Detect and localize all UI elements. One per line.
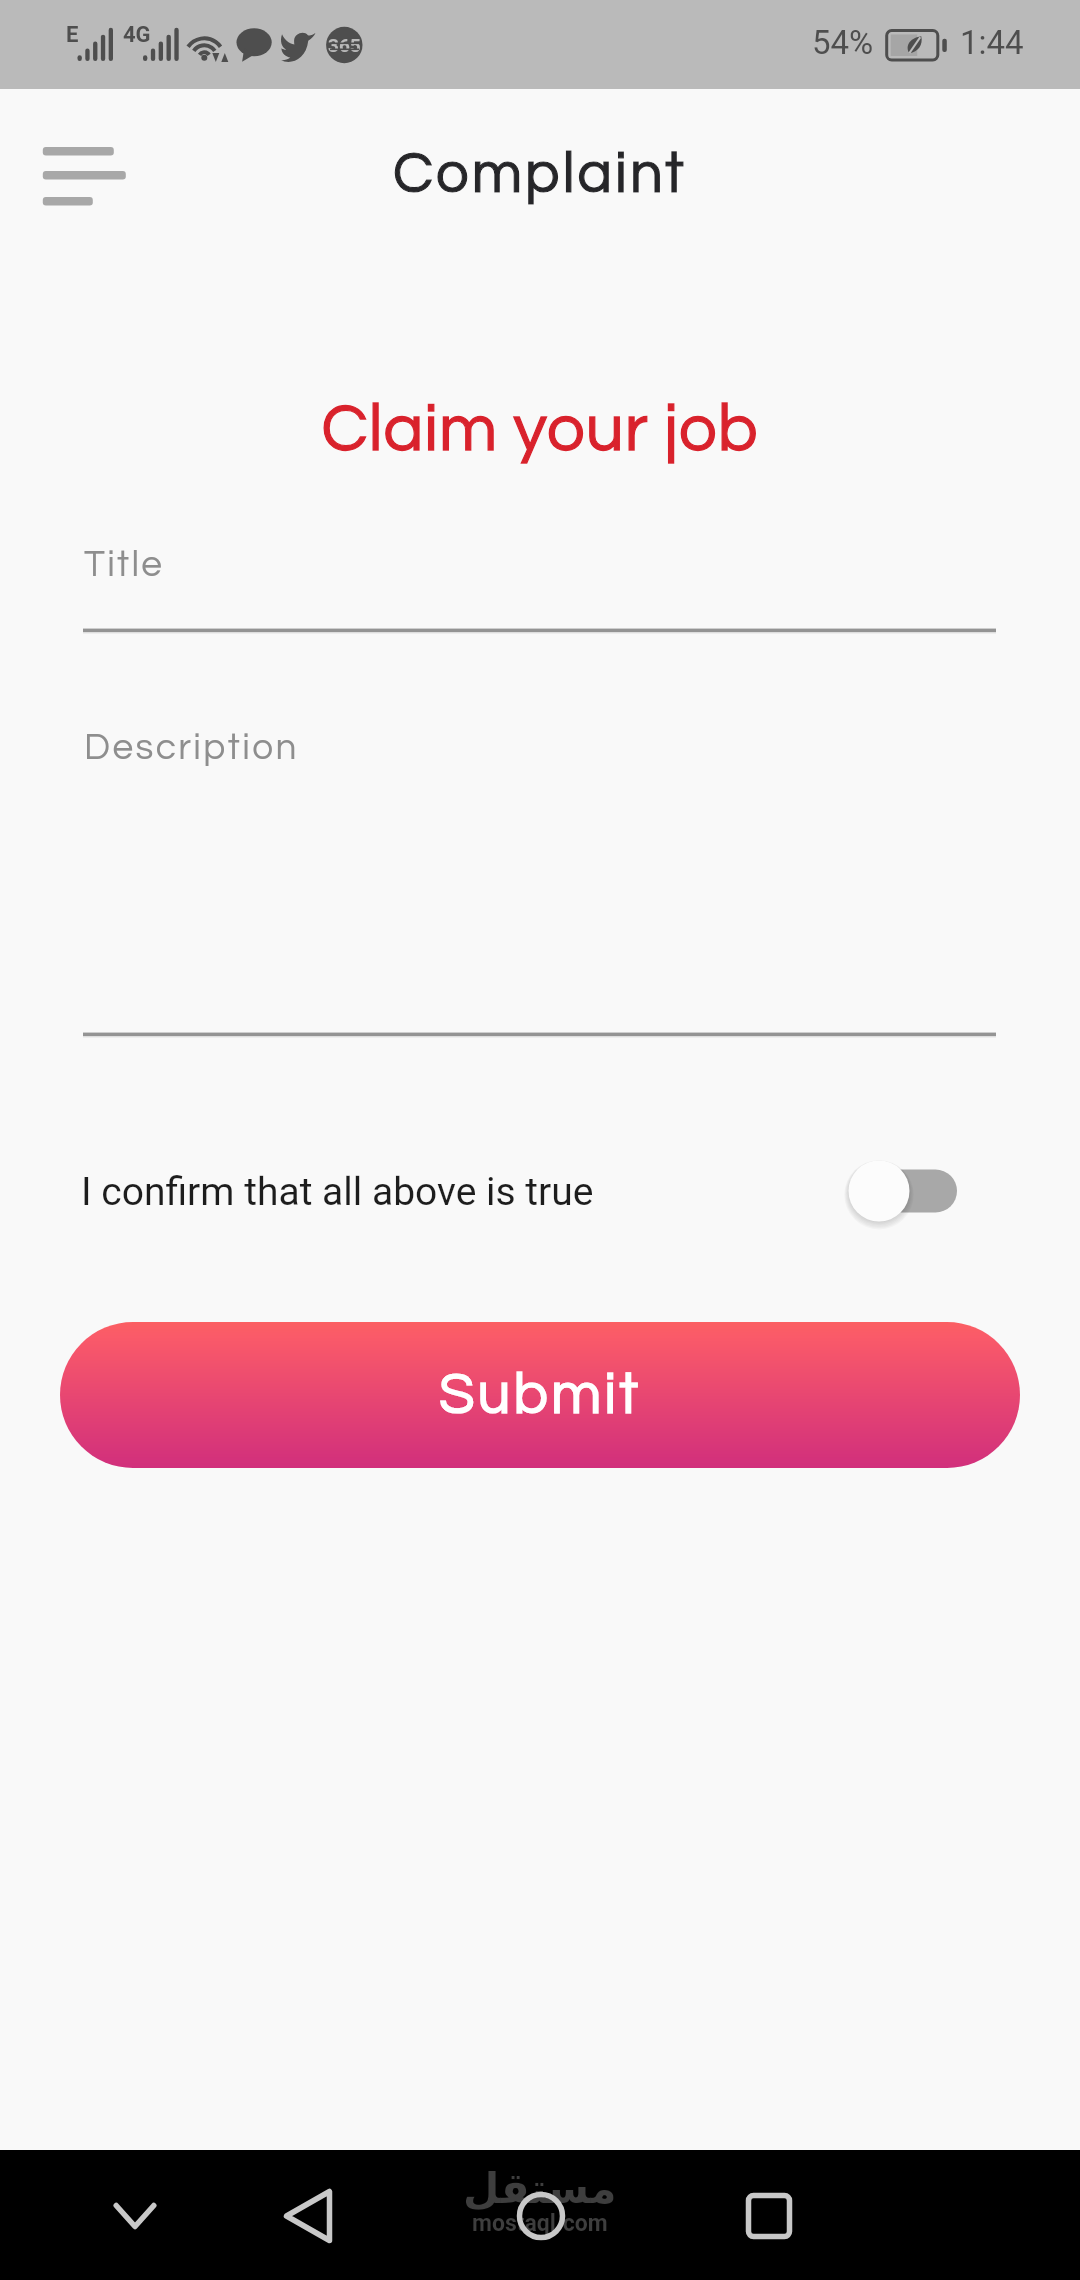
staticText: mostaql.com bbox=[472, 2210, 608, 2237]
staticText: مستقل bbox=[463, 2164, 617, 2213]
staticText: I confirm that all above is true bbox=[81, 1169, 594, 1215]
button[interactable]: Home bbox=[495, 2170, 587, 2262]
staticText: Claim your job bbox=[0, 395, 1080, 464]
staticText: Complaint bbox=[0, 144, 1080, 204]
staticText: 365 bbox=[328, 34, 361, 56]
staticText: Submit bbox=[430, 1365, 650, 1425]
staticText: 4G bbox=[123, 22, 151, 48]
staticText: Claim your job bbox=[0, 395, 1080, 464]
staticText: 54% bbox=[812, 23, 874, 62]
staticText: E bbox=[66, 22, 79, 48]
staticText: 1:44 bbox=[960, 23, 1024, 62]
staticText: Submit bbox=[430, 1365, 650, 1425]
staticText: Complaint bbox=[0, 144, 1080, 204]
button[interactable]: Hide keyboard bbox=[89, 2170, 181, 2262]
staticText: Description bbox=[84, 729, 299, 767]
button[interactable]: Recents bbox=[723, 2170, 815, 2262]
staticText: Title bbox=[84, 546, 165, 584]
button[interactable]: Menu bbox=[20, 120, 150, 230]
button[interactable]: Submit bbox=[60, 1322, 1020, 1468]
button[interactable]: Confirm toggle bbox=[840, 1152, 970, 1232]
button[interactable]: Back bbox=[262, 2170, 354, 2262]
